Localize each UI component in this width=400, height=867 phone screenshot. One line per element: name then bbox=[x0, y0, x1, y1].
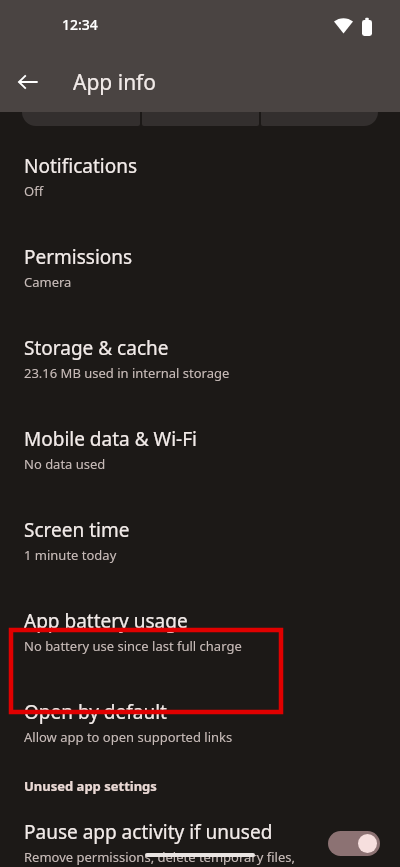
staticText: Unused app settings bbox=[24, 777, 157, 795]
button[interactable] bbox=[22, 112, 140, 126]
staticText: App info bbox=[73, 68, 157, 97]
staticText: Off bbox=[24, 182, 44, 200]
button[interactable]: Storage & cache bbox=[0, 291, 400, 382]
staticText: No data used bbox=[24, 455, 106, 473]
staticText: Permissions bbox=[24, 244, 133, 270]
button[interactable]: Pause app activity if unused toggle bbox=[328, 831, 380, 856]
staticText: App battery usage bbox=[24, 608, 188, 634]
staticText: Pause app activity if unused bbox=[24, 819, 273, 845]
staticText: 12:34 bbox=[62, 15, 98, 34]
staticText: Storage & cache bbox=[24, 335, 169, 361]
button[interactable]: App battery usage bbox=[0, 564, 400, 655]
staticText: Open by default bbox=[24, 699, 167, 725]
button[interactable]: Screen time bbox=[0, 473, 400, 564]
staticText: Screen time bbox=[24, 517, 130, 543]
staticText: Allow app to open supported links bbox=[24, 728, 233, 746]
staticText: Remove permissions, delete temporary fil… bbox=[24, 848, 318, 867]
button[interactable]: Open by default bbox=[0, 655, 400, 746]
staticText: 23.16 MB used in internal storage bbox=[24, 364, 230, 382]
staticText: Mobile data & Wi-Fi bbox=[24, 426, 197, 452]
button[interactable]: Mobile data & Wi-Fi bbox=[0, 382, 400, 473]
button[interactable] bbox=[261, 112, 378, 126]
button[interactable]: Back bbox=[5, 59, 51, 105]
staticText: Notifications bbox=[24, 153, 138, 179]
button[interactable]: Notifications bbox=[0, 126, 400, 200]
other: Wi-Fi and battery status bbox=[334, 17, 378, 37]
button[interactable]: Pause app activity if unused bbox=[0, 819, 400, 867]
staticText: Camera bbox=[24, 273, 72, 291]
button[interactable]: Permissions bbox=[0, 200, 400, 291]
staticText: No battery use since last full charge bbox=[24, 637, 242, 655]
staticText: 1 minute today bbox=[24, 546, 117, 564]
